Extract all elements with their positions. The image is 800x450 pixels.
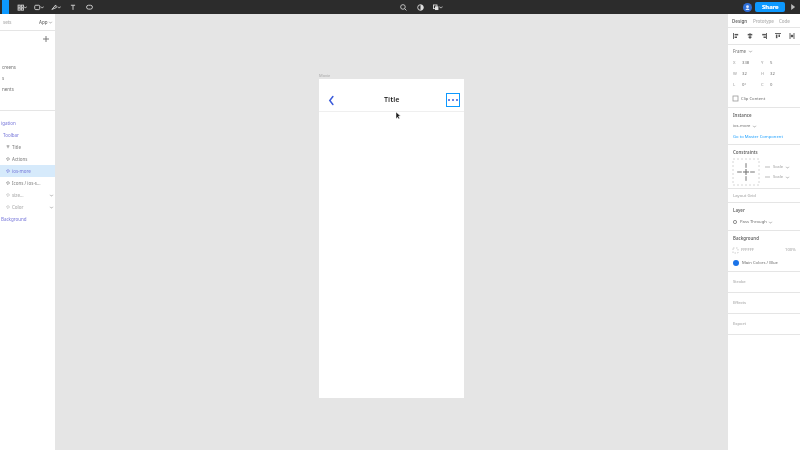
button[interactable]: Scale	[765, 174, 789, 180]
button[interactable]: ios-more	[0, 165, 55, 177]
button[interactable]: Pass Through	[728, 216, 800, 228]
staticText: creens	[2, 64, 16, 70]
staticText: Toolbar	[3, 132, 19, 138]
staticText: Layer	[733, 207, 745, 213]
button[interactable]: Main Colors / Blue	[728, 256, 800, 269]
staticText: s	[2, 75, 5, 81]
staticText: Background	[733, 235, 759, 241]
button[interactable]: Prototype	[753, 18, 774, 24]
staticText: 338	[742, 60, 750, 66]
button[interactable]: Code	[779, 18, 790, 24]
button[interactable]: Clip Content	[728, 93, 800, 104]
staticText: X	[733, 60, 736, 66]
button[interactable]: Share	[755, 2, 785, 12]
button[interactable]: Align 1	[746, 32, 754, 40]
button[interactable]: Account	[743, 3, 752, 12]
staticText: 100%	[785, 247, 796, 253]
staticText: Code	[779, 18, 790, 24]
button[interactable]: Frame	[728, 45, 800, 57]
button[interactable]: Contrast	[412, 0, 429, 14]
staticText: L	[733, 82, 736, 88]
staticText: 5	[770, 60, 773, 66]
button[interactable]: frame	[30, 0, 47, 14]
staticText: Stroke	[733, 279, 746, 285]
staticText: Y	[761, 60, 764, 66]
button[interactable]: Effects	[728, 293, 800, 313]
button[interactable]: Back	[325, 94, 337, 106]
staticText: Scale	[773, 174, 784, 180]
staticText: sets	[3, 19, 12, 25]
staticText: nents	[2, 86, 14, 92]
staticText: Constraints	[733, 149, 758, 155]
button[interactable]: creens	[0, 61, 55, 72]
button[interactable]: Constraints	[733, 159, 759, 185]
button[interactable]: Background	[0, 213, 55, 225]
button[interactable]: Actions	[0, 153, 55, 165]
staticText: W	[733, 71, 737, 77]
staticText: Share	[762, 3, 779, 11]
staticText: Scale	[773, 164, 784, 170]
button[interactable]: igation	[0, 117, 55, 129]
staticText: Title	[384, 95, 400, 105]
staticText: 0	[770, 82, 773, 88]
staticText: ios-more	[12, 168, 31, 174]
staticText: Go to Master Component	[733, 134, 783, 140]
staticText: ios-more	[733, 123, 751, 129]
staticText: Icons / ios-s…	[12, 180, 41, 186]
staticText: igation	[1, 120, 16, 126]
staticText: Movie	[319, 73, 331, 78]
staticText: 32	[770, 71, 775, 77]
button[interactable]: move	[13, 0, 30, 14]
staticText: Background	[1, 216, 27, 222]
staticText: C	[761, 82, 764, 88]
staticText: Prototype	[753, 18, 774, 24]
button[interactable]: Align 0	[732, 32, 740, 40]
staticText: size…	[12, 192, 24, 198]
button[interactable]: Title	[384, 95, 400, 105]
staticText: Actions	[12, 156, 28, 162]
button[interactable]: Stroke	[728, 272, 800, 292]
button[interactable]: Title	[0, 141, 55, 153]
button[interactable]: Align 2	[760, 32, 768, 40]
button[interactable]: pen	[47, 0, 64, 14]
button[interactable]: nents	[0, 83, 55, 94]
staticText: Instance	[733, 112, 752, 118]
button[interactable]: Export	[728, 314, 800, 334]
button[interactable]: More	[446, 93, 460, 107]
button[interactable]: Icons / ios-s…	[0, 177, 55, 189]
staticText: H	[761, 71, 765, 77]
button[interactable]: sets	[3, 19, 12, 25]
staticText: Clip Content	[741, 96, 766, 102]
button[interactable]: Align 4	[788, 32, 796, 40]
staticText: Export	[733, 321, 746, 327]
button[interactable]: Go to Master Component	[728, 131, 800, 142]
button[interactable]: Present	[788, 2, 798, 12]
button[interactable]: App	[39, 19, 52, 25]
button[interactable]: FFFFFF	[728, 244, 800, 256]
staticText: 0°	[742, 82, 747, 88]
staticText: Frame	[733, 48, 747, 54]
button[interactable]: Scale	[765, 164, 789, 170]
button[interactable]: Align 3	[774, 32, 782, 40]
button[interactable]: Zoom	[395, 0, 412, 14]
staticText: Color	[12, 204, 24, 210]
staticText: 32	[742, 71, 747, 77]
button[interactable]: ios-more	[728, 121, 800, 131]
button[interactable]: Layout Grid	[728, 189, 800, 202]
staticText: Pass Through	[740, 219, 767, 225]
button[interactable]: Design	[732, 18, 748, 24]
button[interactable]: size…	[0, 189, 55, 201]
staticText: FFFFFF	[741, 247, 755, 253]
button[interactable]: comment	[81, 0, 98, 14]
button[interactable]: s	[0, 72, 55, 83]
staticText: Effects	[733, 300, 747, 306]
staticText: App	[39, 19, 48, 25]
staticText: Layout Grid	[733, 193, 756, 199]
staticText: Title	[12, 144, 21, 150]
button[interactable]: Color	[0, 201, 55, 213]
button[interactable]: Toolbar	[0, 129, 55, 141]
button[interactable]: Components	[429, 0, 446, 14]
button[interactable]: text	[64, 0, 81, 14]
button[interactable]: Add page	[0, 31, 55, 47]
